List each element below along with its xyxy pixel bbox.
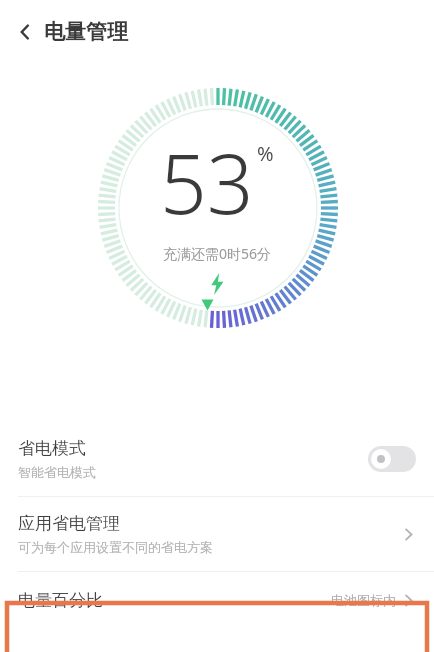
button[interactable]: 应用省电管理 bbox=[0, 497, 434, 571]
staticText: 应用省电管理 bbox=[18, 513, 120, 534]
button[interactable]: Back bbox=[8, 15, 42, 49]
staticText: 可为每个应用设置不同的省电方案 bbox=[18, 539, 213, 555]
staticText: 电池图标内 bbox=[331, 592, 396, 608]
staticText: 电量管理 bbox=[44, 19, 128, 45]
staticText: 53 bbox=[160, 126, 254, 238]
staticText: % bbox=[257, 140, 274, 167]
staticText: 智能省电模式 bbox=[18, 464, 96, 480]
button[interactable]: 电量百分比 bbox=[0, 572, 434, 628]
staticText: 省电模式 bbox=[18, 438, 86, 459]
staticText: 电量百分比 bbox=[18, 590, 103, 611]
staticText: 充满还需0时56分 bbox=[163, 244, 272, 263]
button[interactable]: 省电模式 bbox=[0, 422, 434, 496]
